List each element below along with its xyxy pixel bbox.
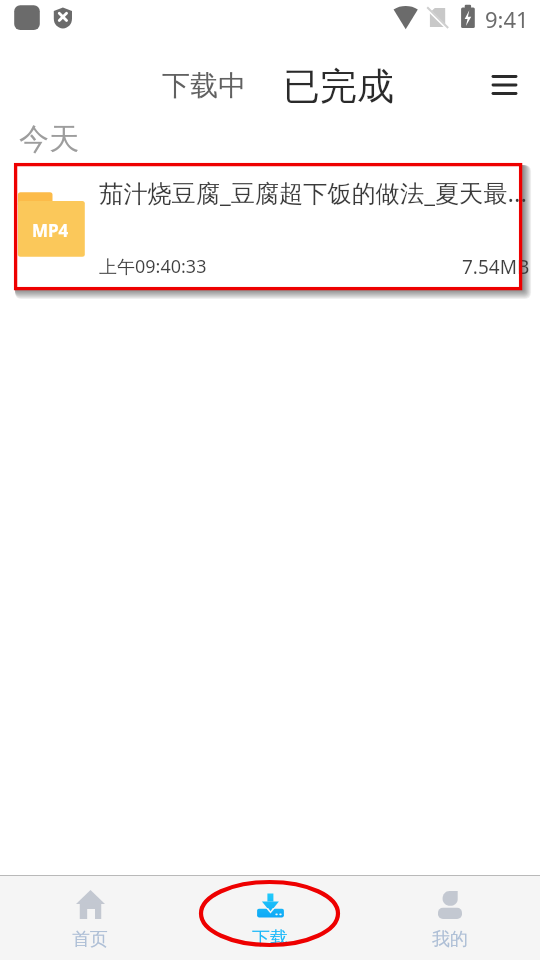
staticText: 今天 — [19, 120, 79, 158]
staticText: 9:41 — [485, 4, 529, 34]
button[interactable]: 已完成 — [263, 53, 414, 120]
staticText: 已完成 — [283, 63, 394, 110]
staticText: 首页 — [72, 928, 108, 951]
staticText: MP4 — [32, 219, 69, 242]
staticText: 我的 — [432, 928, 468, 951]
staticText: 下载中 — [162, 68, 246, 103]
button[interactable]: 下载中 — [142, 58, 266, 113]
staticText: 茄汁烧豆腐_豆腐超下饭的做法_夏天最... — [99, 176, 540, 209]
button[interactable]: Menu — [479, 63, 530, 107]
button[interactable]: 我的 — [360, 876, 540, 960]
button[interactable]: MP4 — [14, 164, 522, 289]
staticText: 7.54MB — [462, 254, 530, 280]
button[interactable]: 首页 — [0, 876, 180, 960]
staticText: 下载 — [252, 927, 288, 950]
staticText: 上午09:40:33 — [99, 254, 207, 279]
button[interactable]: 下载 — [180, 876, 360, 960]
